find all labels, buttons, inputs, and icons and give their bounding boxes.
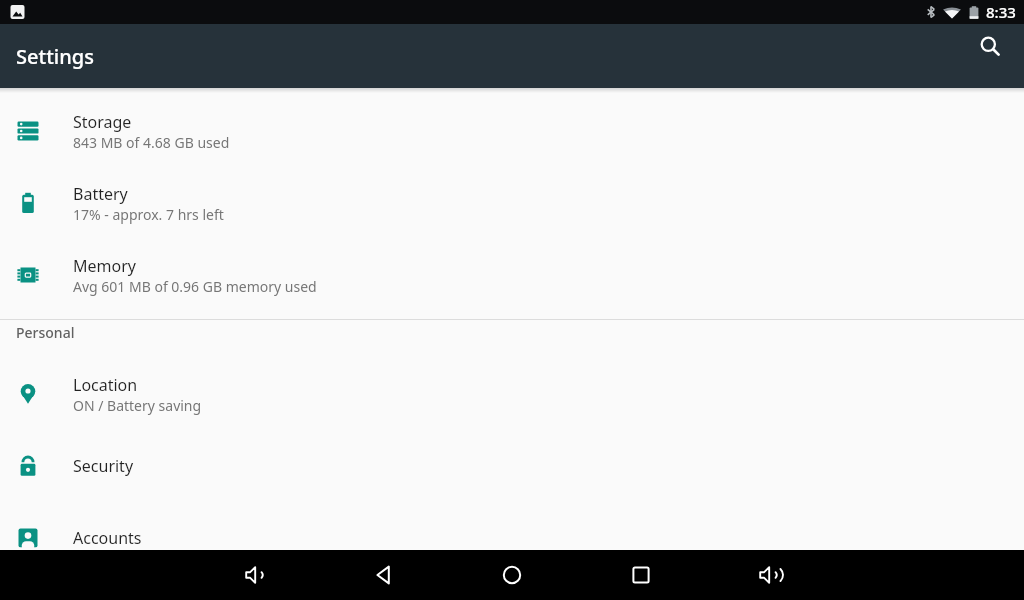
staticText: Avg 601 MB of 0.96 GB memory used — [73, 277, 317, 296]
staticText: Accounts — [73, 527, 142, 549]
button[interactable]: Accounts — [0, 502, 1024, 574]
button[interactable]: Battery — [0, 167, 1024, 239]
staticText: Security — [73, 455, 134, 477]
button[interactable] — [745, 551, 793, 599]
button[interactable]: Storage — [0, 95, 1024, 167]
staticText: 8:33 — [986, 2, 1016, 22]
staticText: Personal — [16, 323, 75, 342]
staticText: 17% - approx. 7 hrs left — [73, 205, 224, 224]
button[interactable]: Memory — [0, 239, 1024, 311]
button[interactable]: Location — [0, 358, 1024, 430]
button[interactable]: Security — [0, 430, 1024, 502]
staticText: ON / Battery saving — [73, 396, 202, 415]
staticText: Location — [73, 374, 138, 396]
button[interactable] — [231, 551, 279, 599]
staticText: Settings — [16, 43, 94, 70]
button[interactable] — [972, 28, 1008, 64]
button[interactable] — [360, 551, 408, 599]
staticText: 843 MB of 4.68 GB used — [73, 133, 230, 152]
staticText: Storage — [73, 111, 132, 133]
staticText: Memory — [73, 255, 136, 277]
staticText: Battery — [73, 183, 128, 205]
button[interactable] — [488, 551, 536, 599]
button[interactable] — [617, 551, 665, 599]
